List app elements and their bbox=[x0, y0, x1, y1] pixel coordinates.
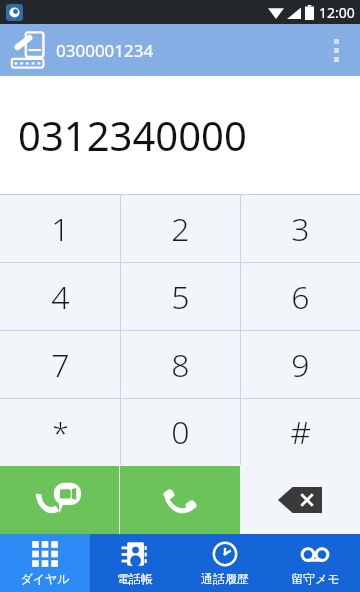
staticText: 留守メモ bbox=[291, 571, 340, 586]
button[interactable]: Call bbox=[120, 466, 240, 534]
button[interactable]: Delete bbox=[240, 466, 360, 534]
staticText: 8 bbox=[171, 343, 190, 387]
button[interactable]: 0 bbox=[121, 399, 240, 465]
button[interactable]: * bbox=[0, 399, 120, 465]
staticText: 1 bbox=[51, 207, 70, 251]
staticText: 6 bbox=[291, 275, 310, 319]
staticText: 4 bbox=[51, 275, 70, 319]
staticText: 3 bbox=[291, 207, 310, 251]
staticText: ダイヤル bbox=[20, 571, 70, 586]
button[interactable]: 通話履歴 bbox=[180, 534, 270, 592]
button[interactable]: 留守メモ bbox=[270, 534, 360, 592]
staticText: 0312340000 bbox=[18, 108, 247, 162]
button[interactable]: 9 bbox=[241, 331, 360, 398]
staticText: 0 bbox=[171, 410, 190, 454]
button[interactable]: 2 bbox=[121, 195, 240, 262]
button[interactable]: 8 bbox=[121, 331, 240, 398]
button[interactable]: 電話帳 bbox=[90, 534, 180, 592]
button[interactable]: 3 bbox=[241, 195, 360, 262]
staticText: * bbox=[52, 412, 69, 453]
button[interactable]: ダイヤル bbox=[0, 534, 90, 592]
staticText: 12:00 bbox=[319, 3, 355, 22]
button[interactable]: 1 bbox=[0, 195, 120, 262]
staticText: 0300001234 bbox=[56, 39, 154, 62]
staticText: 5 bbox=[171, 275, 190, 319]
button[interactable]: 7 bbox=[0, 331, 120, 398]
staticText: 通話履歴 bbox=[201, 571, 249, 586]
button[interactable]: More options bbox=[312, 26, 360, 74]
staticText: # bbox=[290, 410, 311, 454]
button[interactable]: 5 bbox=[121, 263, 240, 330]
button[interactable]: Video call bbox=[0, 466, 119, 534]
button[interactable]: 6 bbox=[241, 263, 360, 330]
staticText: 7 bbox=[51, 343, 70, 387]
staticText: 9 bbox=[291, 343, 310, 387]
staticText: 電話帳 bbox=[117, 571, 153, 586]
staticText: 2 bbox=[171, 207, 190, 251]
button[interactable]: # bbox=[241, 399, 360, 465]
button[interactable]: Line select bbox=[10, 28, 54, 72]
button[interactable]: 4 bbox=[0, 263, 120, 330]
